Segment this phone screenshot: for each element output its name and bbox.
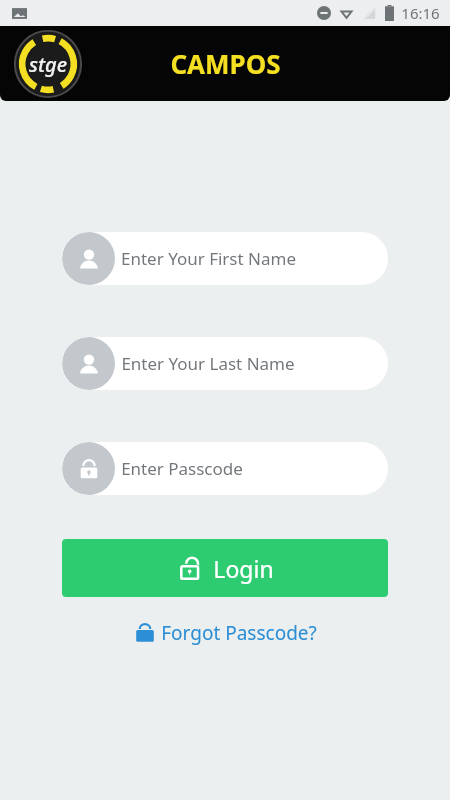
button[interactable]: Login <box>62 539 388 597</box>
button[interactable]: Forgot Passcode? <box>130 618 321 648</box>
button[interactable]: Enter Passcode <box>62 442 388 495</box>
staticText: Enter Passcode <box>121 457 243 480</box>
staticText: CAMPOS <box>170 46 281 81</box>
staticText: 16:16 <box>401 3 440 23</box>
staticText: stge <box>29 51 67 78</box>
staticText: Login <box>213 553 274 584</box>
button[interactable]: Enter Your Last Name <box>62 337 388 390</box>
button[interactable]: Enter Your First Name <box>62 232 388 285</box>
staticText: Enter Your First Name <box>121 247 296 270</box>
staticText: Forgot Passcode? <box>161 620 317 646</box>
staticText: Enter Your Last Name <box>121 352 295 375</box>
button[interactable]: App logo <box>12 28 84 100</box>
